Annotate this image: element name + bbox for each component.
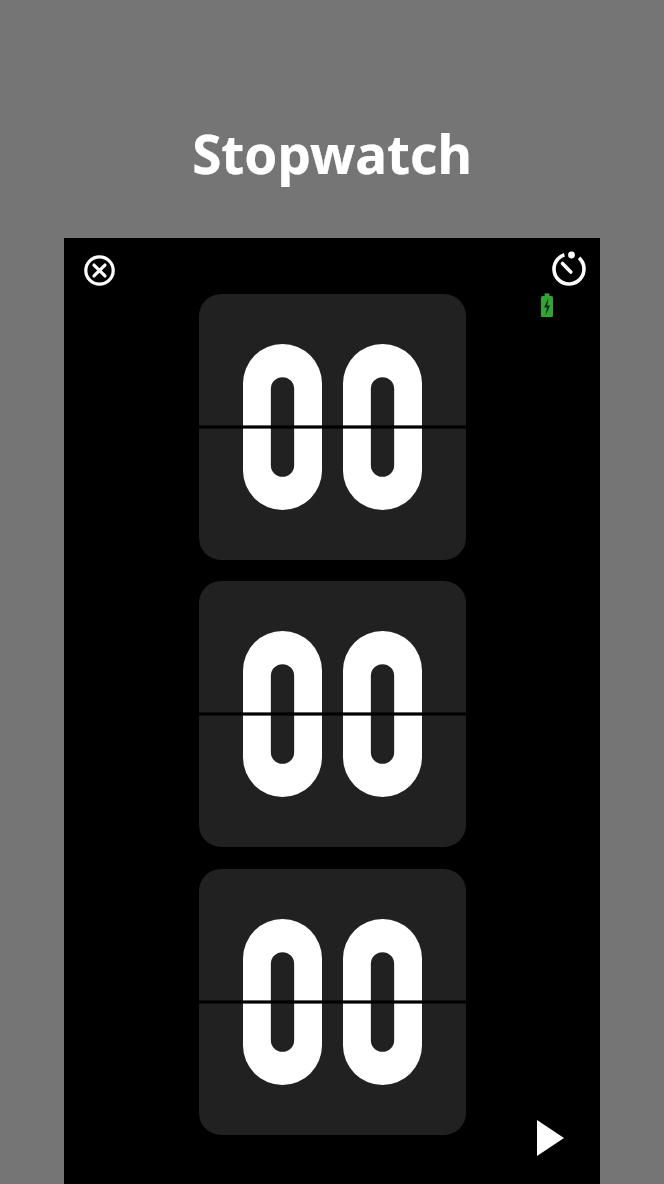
button[interactable]: Seconds 00 — [199, 869, 466, 1135]
button[interactable]: Stopwatch — [0, 117, 664, 189]
button[interactable]: Start — [520, 1102, 584, 1166]
button[interactable]: Close — [79, 250, 119, 290]
button[interactable]: Hours 00 — [199, 294, 466, 560]
button[interactable]: Timer mode — [549, 249, 589, 289]
button[interactable]: Minutes 00 — [199, 581, 466, 847]
